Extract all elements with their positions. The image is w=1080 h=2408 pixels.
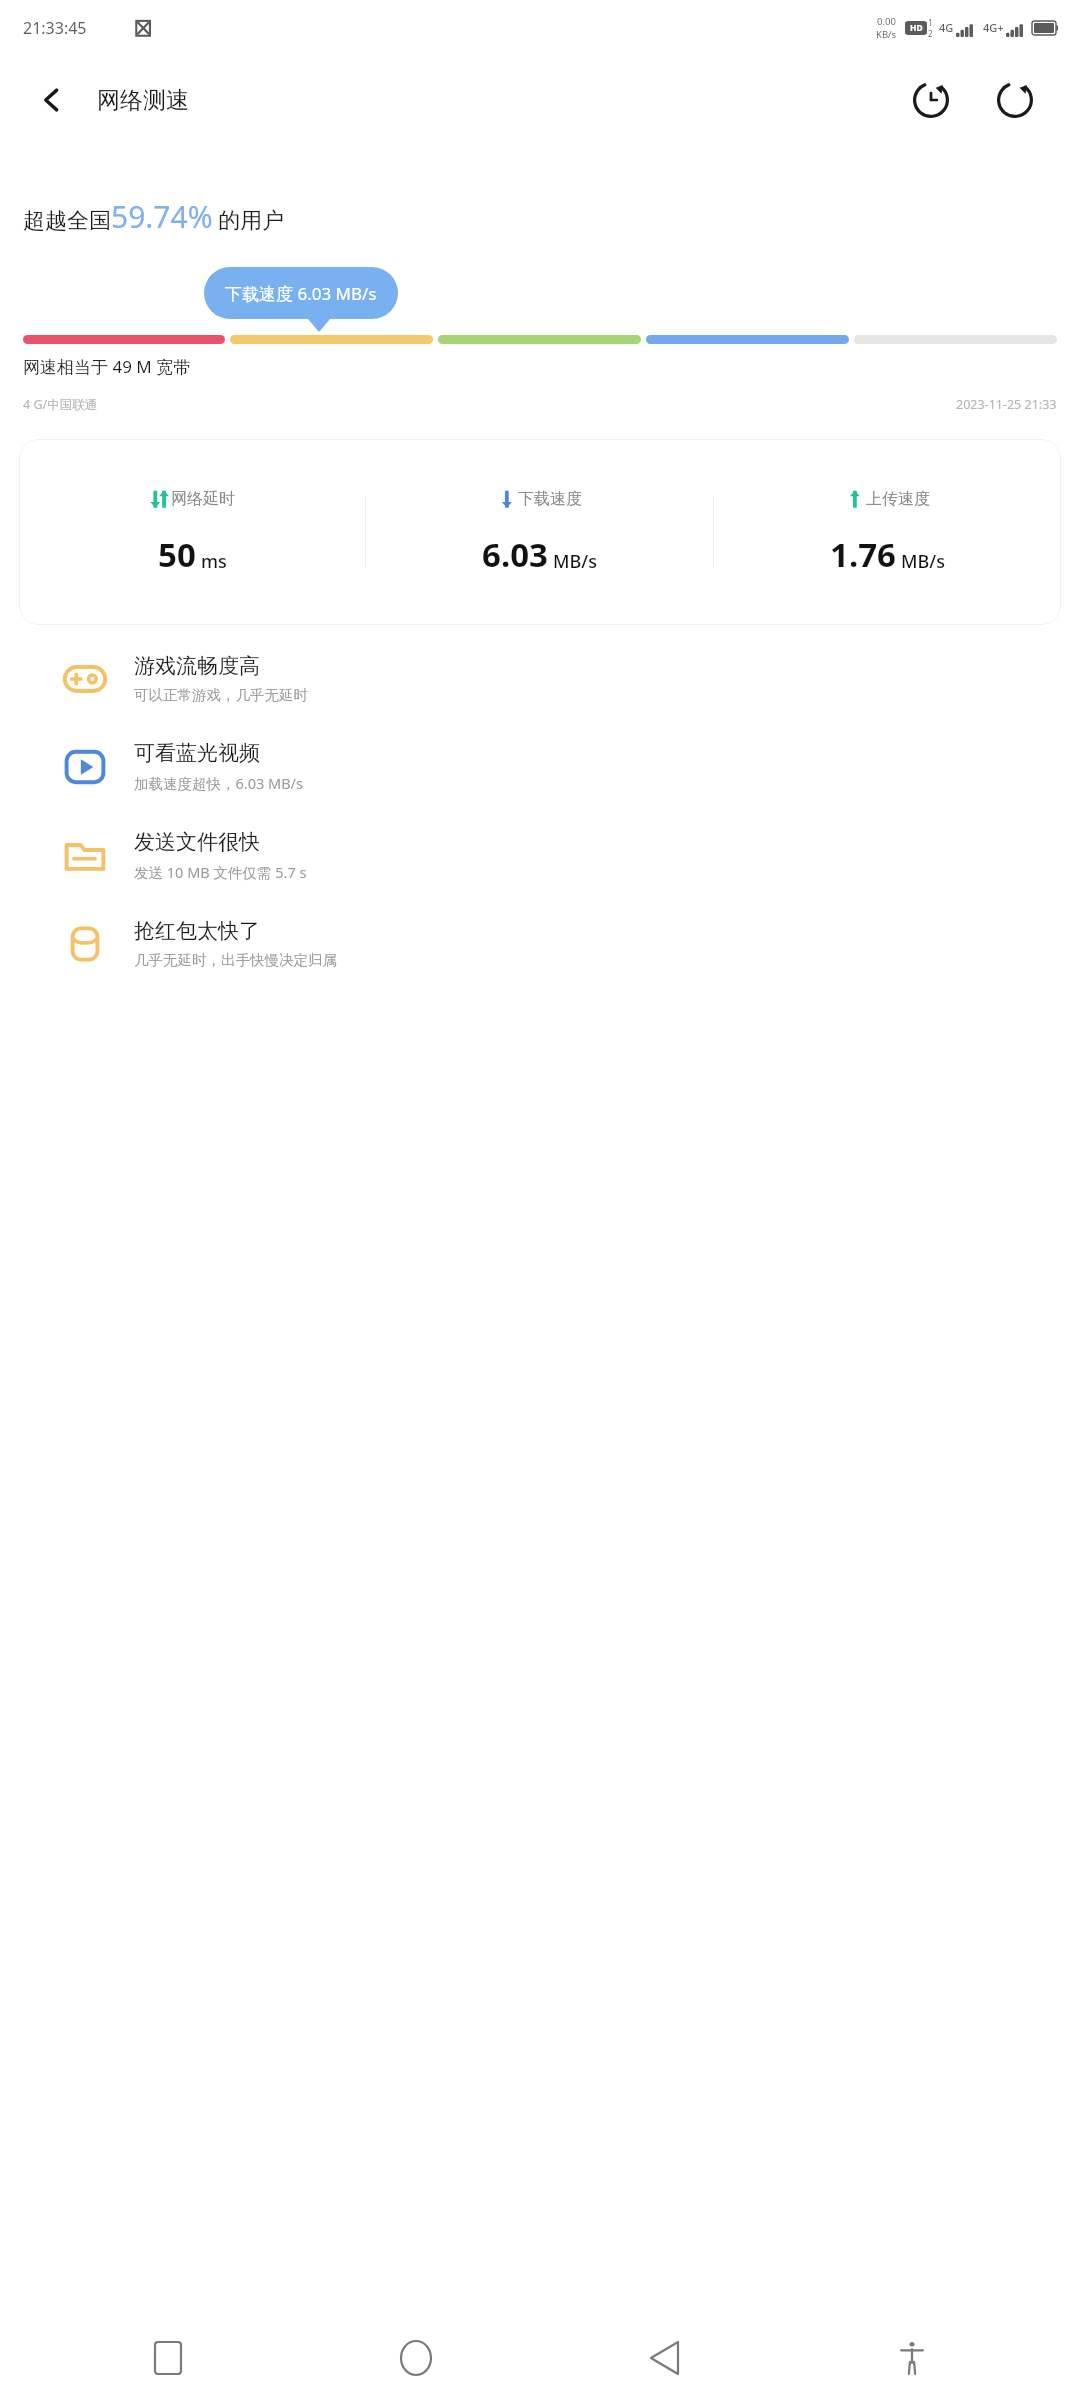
button[interactable]: Home bbox=[292, 2318, 540, 2398]
button[interactable]: Back bbox=[540, 2318, 788, 2398]
button[interactable]: Accessibility bbox=[788, 2318, 1036, 2398]
staticText: HD bbox=[910, 22, 923, 34]
staticText: 2 bbox=[928, 28, 933, 39]
button[interactable]: 抢红包太快了 bbox=[0, 912, 1080, 975]
button[interactable]: Refresh bbox=[986, 71, 1044, 129]
button[interactable]: 可看蓝光视频 bbox=[0, 734, 1080, 799]
button[interactable]: 发送文件很快 bbox=[0, 823, 1080, 888]
staticText: 几乎无延时，出手快慢决定归属 bbox=[134, 951, 337, 969]
staticText: ms bbox=[201, 549, 227, 574]
staticText: 4 G/中国联通 bbox=[23, 396, 98, 413]
staticText: 1 bbox=[928, 17, 933, 28]
staticText: 4G bbox=[939, 20, 954, 35]
staticText: 加载速度超快，6.03 MB/s bbox=[134, 773, 303, 793]
staticText: 下载速度 6.03 MB/s bbox=[225, 282, 377, 305]
staticText: 6.03 bbox=[482, 532, 548, 577]
staticText: 网速相当于 49 M 宽带 bbox=[23, 355, 191, 378]
staticText: 游戏流畅度高 bbox=[134, 653, 260, 679]
staticText: 21:33:45 bbox=[23, 17, 87, 39]
staticText: 上传速度 bbox=[866, 489, 930, 509]
staticText: KB/s bbox=[876, 28, 897, 41]
staticText: 网络测速 bbox=[97, 86, 189, 115]
button[interactable]: 游戏流畅度高 bbox=[0, 647, 1080, 710]
staticText: 超越全国59.74% 的用户 bbox=[23, 196, 285, 237]
staticText: 网络延时 bbox=[171, 489, 235, 509]
staticText: 发送文件很快 bbox=[134, 829, 260, 855]
staticText: 4G+ bbox=[983, 20, 1004, 35]
button[interactable]: Back bbox=[26, 74, 78, 126]
staticText: 可以正常游戏，几乎无延时 bbox=[134, 686, 308, 704]
staticText: 下载速度 bbox=[518, 489, 582, 509]
staticText: 2023-11-25 21:33 bbox=[956, 396, 1057, 413]
staticText: MB/s bbox=[901, 549, 945, 574]
staticText: 抢红包太快了 bbox=[134, 918, 260, 944]
staticText: 0.00 bbox=[877, 15, 896, 28]
staticText: 1.76 bbox=[830, 532, 896, 577]
staticText: MB/s bbox=[553, 549, 597, 574]
staticText: 可看蓝光视频 bbox=[134, 740, 260, 766]
button[interactable]: Recents bbox=[44, 2318, 292, 2398]
button[interactable]: History bbox=[902, 71, 960, 129]
staticText: 50 bbox=[158, 532, 196, 577]
staticText: 发送 10 MB 文件仅需 5.7 s bbox=[134, 862, 307, 882]
